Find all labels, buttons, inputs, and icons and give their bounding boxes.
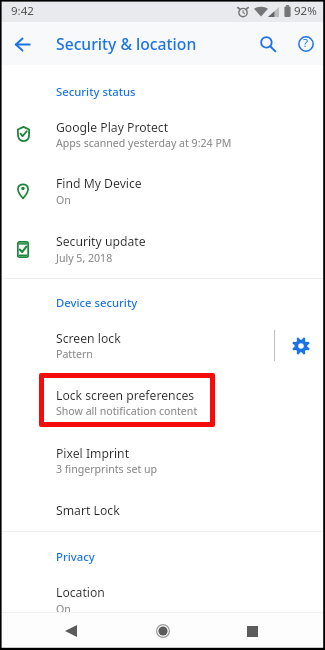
staticText: 9:42 <box>11 3 34 19</box>
button[interactable]: Recent apps <box>230 612 274 650</box>
staticText: Location <box>56 584 105 601</box>
button[interactable]: Search <box>254 30 282 58</box>
staticText: Screen lock <box>56 330 121 347</box>
staticText: Privacy <box>56 549 95 564</box>
button[interactable]: Find My Device <box>0 153 325 210</box>
button[interactable]: Home <box>141 612 185 650</box>
staticText: Pixel Imprint <box>56 445 130 462</box>
staticText: Pattern <box>56 347 93 361</box>
button[interactable]: Google Play Protect <box>0 96 325 153</box>
staticText: Find My Device <box>56 175 142 192</box>
staticText: Device security <box>56 295 138 310</box>
button[interactable]: Back <box>8 30 36 58</box>
button[interactable]: Location <box>0 561 325 612</box>
staticText: On <box>56 193 71 207</box>
button[interactable]: Lock screen preferences <box>0 364 325 421</box>
staticText: Security status <box>56 84 136 99</box>
button[interactable]: Help <box>292 30 320 58</box>
button[interactable]: Pixel Imprint <box>0 422 325 479</box>
staticText: Security update <box>56 233 146 250</box>
button[interactable]: Smart Lock <box>0 479 325 531</box>
staticText: Security & location <box>56 33 197 54</box>
staticText: Google Play Protect <box>56 119 169 136</box>
staticText: Apps scanned yesterday at 9:24 PM <box>56 136 232 150</box>
staticText: 3 fingerprints set up <box>56 462 158 476</box>
staticText: ? <box>303 35 309 51</box>
button[interactable]: Screen lock settings <box>279 324 323 368</box>
button[interactable]: Back <box>49 612 93 650</box>
staticText: Show all notification content <box>56 404 198 418</box>
staticText: On <box>56 602 71 616</box>
button[interactable]: Security update <box>0 211 325 268</box>
staticText: July 5, 2018 <box>56 251 113 265</box>
staticText: Smart Lock <box>56 502 120 519</box>
staticText: 92% <box>294 3 317 19</box>
button[interactable]: Screen lock <box>0 307 274 364</box>
staticText: Lock screen preferences <box>56 387 195 404</box>
